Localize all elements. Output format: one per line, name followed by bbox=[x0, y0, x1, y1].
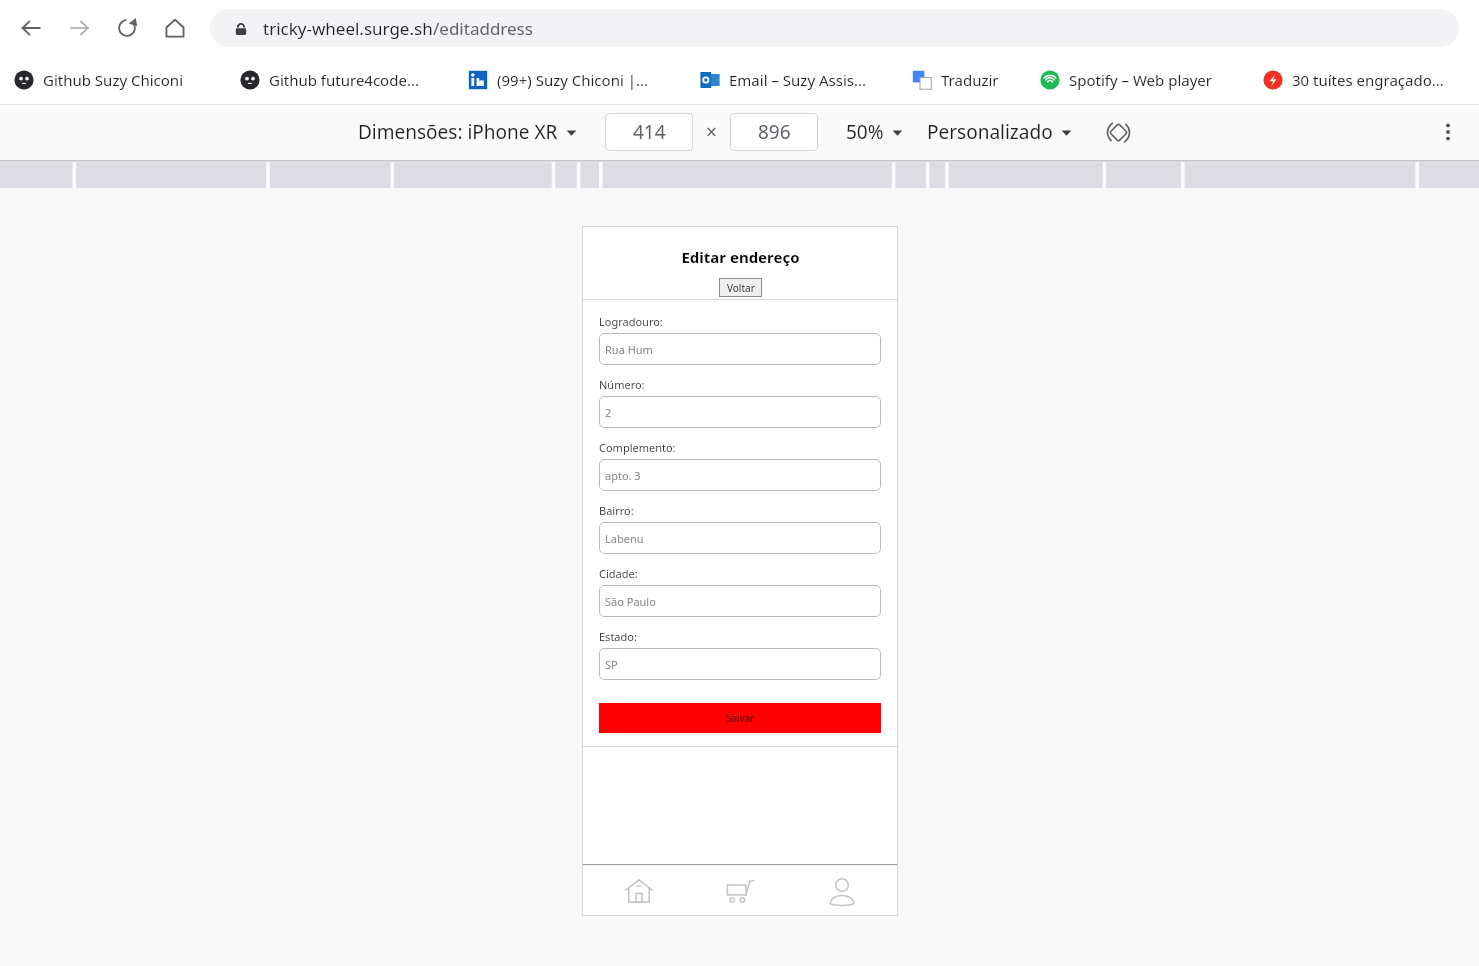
staticText: Github Suzy Chiconi bbox=[43, 70, 184, 90]
staticText: Estado: bbox=[599, 629, 637, 644]
button[interactable]: Spotify – Web player bbox=[1040, 56, 1212, 104]
staticText: 50% bbox=[846, 119, 884, 145]
staticText: Cidade: bbox=[599, 566, 638, 581]
staticText: São Paulo bbox=[605, 594, 656, 609]
staticText: 896 bbox=[758, 119, 791, 145]
button[interactable]: 896 bbox=[730, 113, 818, 151]
staticText: Voltar bbox=[727, 281, 755, 295]
staticText: Bairro: bbox=[599, 503, 634, 518]
button[interactable]: Home bbox=[158, 11, 192, 45]
button[interactable]: Email – Suzy Assis... bbox=[700, 56, 866, 104]
button[interactable]: SP bbox=[599, 648, 881, 680]
staticText: 30 tuítes engraçado... bbox=[1292, 70, 1444, 90]
button[interactable]: Reload bbox=[110, 11, 144, 45]
staticText: Editar endereço bbox=[681, 247, 800, 267]
button[interactable]: Github future4code... bbox=[240, 56, 419, 104]
button[interactable]: Rotate bbox=[1100, 114, 1136, 150]
staticText: 2 bbox=[605, 405, 612, 420]
staticText: Labenu bbox=[605, 531, 644, 546]
button[interactable]: Rua Hum bbox=[599, 333, 881, 365]
staticText: Rua Hum bbox=[605, 342, 653, 357]
button[interactable]: Dimensões: iPhone XR bbox=[358, 119, 577, 145]
button[interactable]: 30 tuítes engraçado... bbox=[1263, 56, 1444, 104]
staticText: Traduzir bbox=[941, 70, 999, 90]
button[interactable]: Personalizado bbox=[927, 119, 1072, 145]
button[interactable]: Voltar bbox=[719, 278, 762, 297]
button[interactable]: (99+) Suzy Chiconi |... bbox=[468, 56, 649, 104]
button[interactable]: More options bbox=[1431, 115, 1465, 149]
staticText: (99+) Suzy Chiconi |... bbox=[497, 70, 649, 90]
button[interactable]: Salvar bbox=[599, 703, 881, 733]
staticText: Complemento: bbox=[599, 440, 676, 455]
button[interactable]: apto. 3 bbox=[599, 459, 881, 491]
staticText: Personalizado bbox=[927, 119, 1053, 145]
staticText: Spotify – Web player bbox=[1069, 70, 1212, 90]
staticText: /editaddress bbox=[433, 17, 533, 40]
staticText: Salvar bbox=[726, 711, 755, 725]
staticText: Logradouro: bbox=[599, 314, 663, 329]
staticText: Email – Suzy Assis... bbox=[729, 70, 866, 90]
button[interactable]: tricky-wheel.surge.sh bbox=[210, 9, 1459, 47]
button[interactable]: São Paulo bbox=[599, 585, 881, 617]
staticText: × bbox=[706, 119, 717, 145]
button[interactable]: Back bbox=[14, 11, 48, 45]
button[interactable]: Traduzir bbox=[912, 56, 999, 104]
staticText: tricky-wheel.surge.sh bbox=[263, 17, 433, 40]
button[interactable]: 414 bbox=[605, 113, 693, 151]
staticText: apto. 3 bbox=[605, 468, 641, 483]
staticText: Github future4code... bbox=[269, 70, 419, 90]
staticText: 414 bbox=[633, 119, 666, 145]
button[interactable]: 50% bbox=[846, 119, 903, 145]
button[interactable]: Github Suzy Chiconi bbox=[14, 56, 184, 104]
button[interactable]: Labenu bbox=[599, 522, 881, 554]
button[interactable]: Home bbox=[594, 865, 684, 916]
button[interactable]: Cart bbox=[695, 865, 785, 916]
staticText: Dimensões: iPhone XR bbox=[358, 119, 558, 145]
staticText: SP bbox=[605, 657, 618, 672]
staticText: Número: bbox=[599, 377, 645, 392]
button[interactable]: Profile bbox=[797, 865, 887, 916]
button[interactable]: 2 bbox=[599, 396, 881, 428]
button[interactable]: Forward bbox=[62, 11, 96, 45]
